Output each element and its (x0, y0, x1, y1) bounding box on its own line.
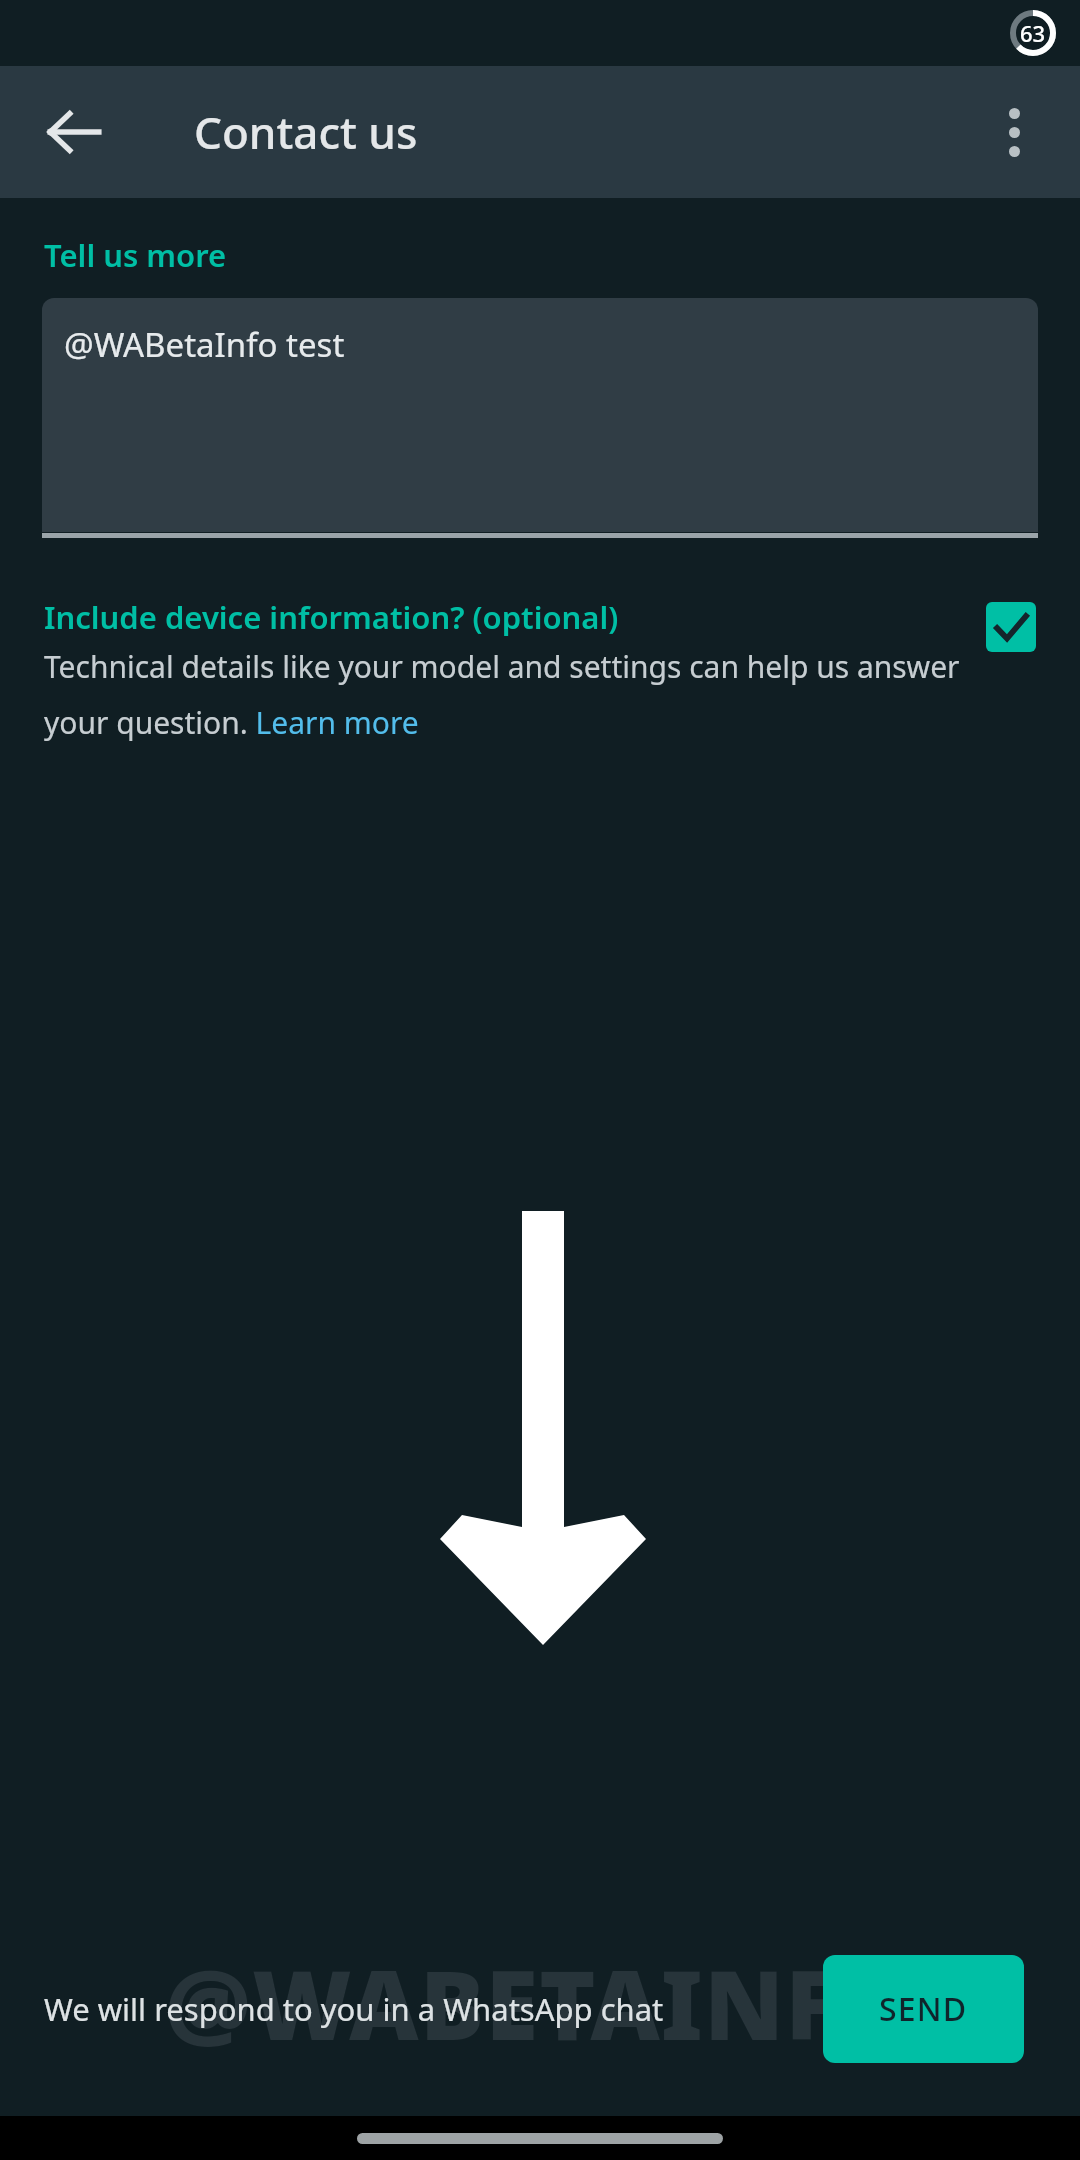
staticText: Include device information? (optional) (44, 596, 619, 638)
staticText: Contact us (194, 102, 418, 162)
staticText: @WABetaInfo test (64, 322, 345, 367)
button[interactable]: Include device information? (optional) (0, 596, 1080, 743)
staticText: SEND (879, 1987, 968, 2031)
button[interactable]: SEND (823, 1955, 1024, 2063)
button[interactable]: More options (966, 84, 1062, 180)
button[interactable]: Include device information checkbox, che… (984, 600, 1038, 654)
staticText: Tell us more (44, 234, 227, 276)
staticText: We will respond to you in a WhatsApp cha… (44, 1988, 823, 2030)
button[interactable]: @WABetaInfo test (42, 298, 1038, 538)
button[interactable]: Back (26, 84, 122, 180)
staticText: @WABETAINFO (165, 1937, 916, 2068)
staticText: 63 (1020, 18, 1046, 48)
staticText: Technical details like your model and se… (44, 646, 970, 743)
